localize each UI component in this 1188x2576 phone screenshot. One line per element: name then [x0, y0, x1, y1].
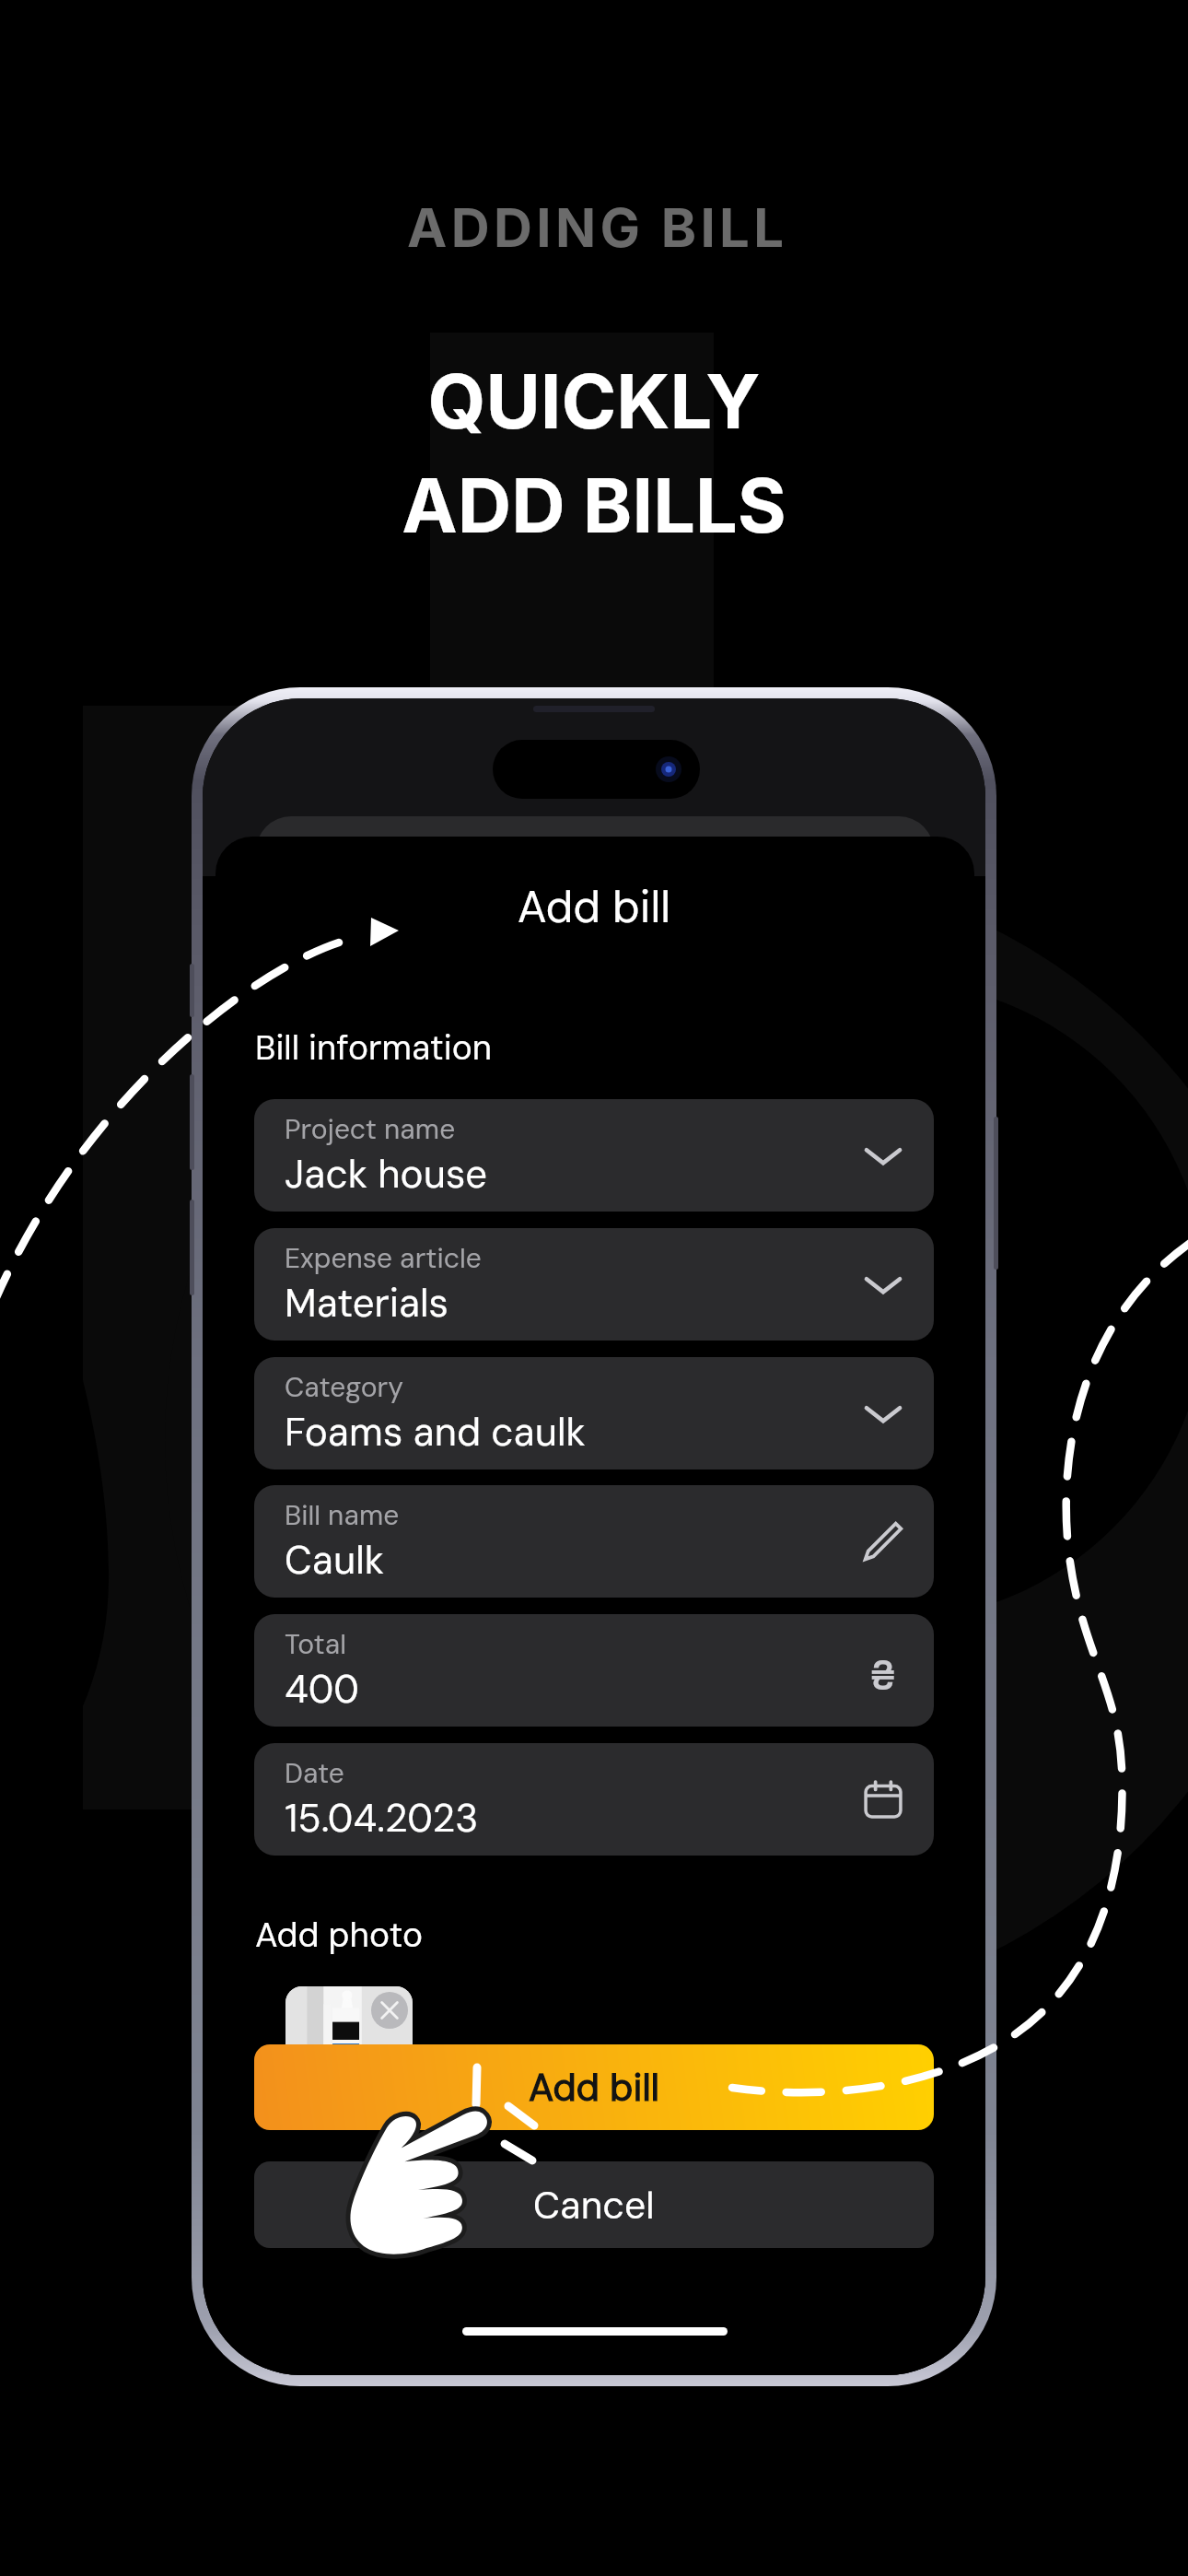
staticText: Total: [285, 1626, 347, 1662]
button[interactable]: Date: [254, 1743, 934, 1856]
staticText: 15.04.2023: [285, 1793, 479, 1844]
staticText: Caulk: [285, 1535, 384, 1586]
staticText: Foams and caulk: [285, 1407, 586, 1458]
button[interactable]: Total: [254, 1614, 934, 1727]
staticText: Date: [285, 1755, 344, 1791]
button[interactable]: Add bill: [254, 2044, 934, 2130]
staticText: 400: [285, 1664, 359, 1715]
button[interactable]: Remove photo: [371, 1992, 408, 2029]
staticText: Project name: [285, 1111, 456, 1147]
staticText: QUICKLY ADD BILLS: [402, 357, 786, 551]
staticText: Add bill: [529, 2063, 660, 2112]
button[interactable]: Receipt photo: [285, 1986, 413, 2113]
button[interactable]: Expense article: [254, 1228, 934, 1341]
staticText: Add photo: [255, 1913, 424, 1957]
staticText: Bill name: [285, 1497, 400, 1533]
staticText: Cancel: [533, 2181, 655, 2230]
staticText: Materials: [285, 1278, 448, 1329]
staticText: Jack house: [285, 1149, 488, 1200]
staticText: Category: [285, 1369, 403, 1405]
button[interactable]: Bill name: [254, 1485, 934, 1598]
button[interactable]: Project name: [254, 1099, 934, 1212]
button[interactable]: Category: [254, 1357, 934, 1469]
staticText: Add bill: [203, 878, 985, 935]
staticText: Expense article: [285, 1240, 482, 1276]
staticText: ADDING BILL: [407, 195, 788, 260]
button[interactable]: Cancel: [254, 2161, 934, 2248]
staticText: ₴: [869, 1650, 897, 1691]
staticText: Bill information: [255, 1025, 493, 1070]
